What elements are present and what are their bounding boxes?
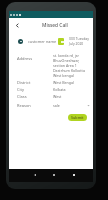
staticText: Reason <box>17 103 53 108</box>
button[interactable]: Submit <box>68 114 87 121</box>
staticText: West Bengal <box>53 80 90 85</box>
staticText: XXX Tuesday <box>69 36 89 41</box>
staticText: July 2020 <box>69 41 84 46</box>
button[interactable]: Back <box>32 172 37 177</box>
button[interactable]: Back <box>13 21 22 30</box>
staticText: Missed Call <box>42 22 68 29</box>
staticText: District <box>17 80 53 85</box>
button[interactable]: Home <box>51 172 56 177</box>
staticText: West <box>53 94 90 99</box>
staticText: Kolkata <box>53 87 90 92</box>
staticText: sale <box>53 103 87 108</box>
staticText: Address <box>17 56 53 61</box>
button[interactable]: Recents <box>71 172 76 177</box>
staticText: City <box>17 87 53 92</box>
staticText: st. konda rd, jsr BhuvOneshwar, section … <box>53 53 90 78</box>
staticText: customer name <box>28 39 57 44</box>
staticText: Class <box>17 94 53 99</box>
staticText: Submit <box>71 115 84 120</box>
